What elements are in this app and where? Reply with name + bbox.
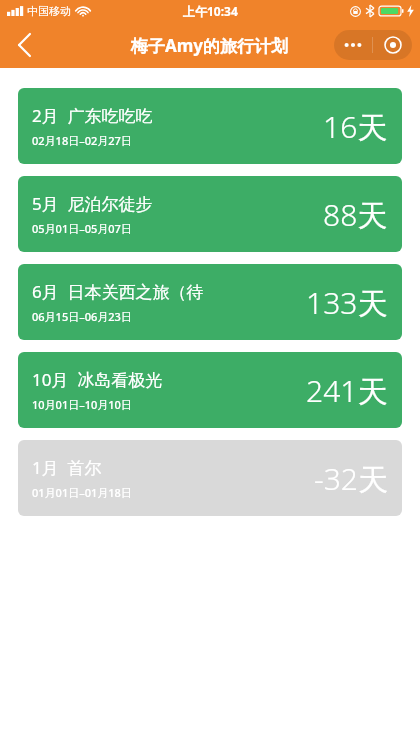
staticText: 上午10:34 <box>183 3 238 19</box>
staticText: 01月01日–01月18日 <box>32 485 132 500</box>
button[interactable]: 10月 冰岛看极光 <box>18 352 402 428</box>
button[interactable]: 5月 尼泊尔徒步 <box>18 176 402 252</box>
staticText: 02月18日–02月27日 <box>32 133 132 148</box>
staticText: 16天 <box>323 106 388 147</box>
staticText: 88天 <box>323 194 388 235</box>
staticText: 05月01日–05月07日 <box>32 221 132 236</box>
button[interactable]: 6月 日本关西之旅（待 <box>18 264 402 340</box>
button[interactable]: 2月 广东吃吃吃 <box>18 88 402 164</box>
staticText: 梅子Amy的旅行计划 <box>131 34 289 57</box>
staticText: 10月01日–10月10日 <box>32 397 132 412</box>
button[interactable]: More and close mini program <box>334 30 412 60</box>
staticText: 6月 日本关西之旅（待 <box>32 280 204 303</box>
staticText: 5月 尼泊尔徒步 <box>32 192 153 215</box>
button[interactable]: 1月 首尔 <box>18 440 402 516</box>
staticText: -32天 <box>314 458 388 499</box>
staticText: 1月 首尔 <box>32 456 102 479</box>
staticText: 241天 <box>306 370 388 411</box>
button[interactable]: Back <box>6 27 42 63</box>
staticText: 2月 广东吃吃吃 <box>32 104 153 127</box>
staticText: 中国移动 <box>27 4 71 18</box>
staticText: 10月 冰岛看极光 <box>32 368 163 391</box>
staticText: 06月15日–06月23日 <box>32 309 132 324</box>
staticText: 133天 <box>306 282 388 323</box>
